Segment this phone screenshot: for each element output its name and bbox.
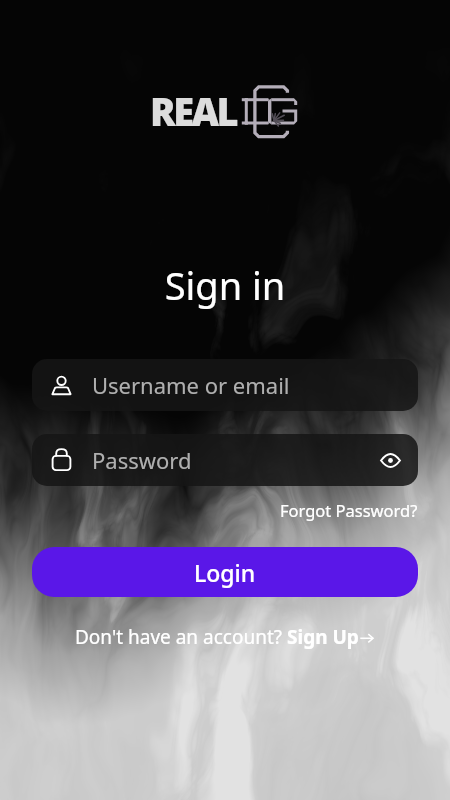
staticText: Forgot Password? bbox=[280, 499, 418, 521]
staticText: Sign Up bbox=[287, 624, 359, 650]
staticText: Don't have an account? bbox=[75, 624, 287, 650]
staticText: Sign in bbox=[0, 259, 450, 311]
staticText: Username or email bbox=[92, 370, 290, 400]
staticText: Password bbox=[92, 445, 192, 475]
button[interactable]: Login bbox=[32, 547, 418, 597]
staticText: Login bbox=[194, 557, 256, 588]
button[interactable]: Password bbox=[32, 434, 418, 486]
button[interactable]: Username or email bbox=[32, 359, 418, 411]
button[interactable]: Sign Up bbox=[287, 624, 375, 650]
button[interactable]: Forgot Password? bbox=[278, 497, 420, 523]
button[interactable]: Show password bbox=[372, 442, 408, 478]
staticText: REAL bbox=[150, 85, 236, 137]
